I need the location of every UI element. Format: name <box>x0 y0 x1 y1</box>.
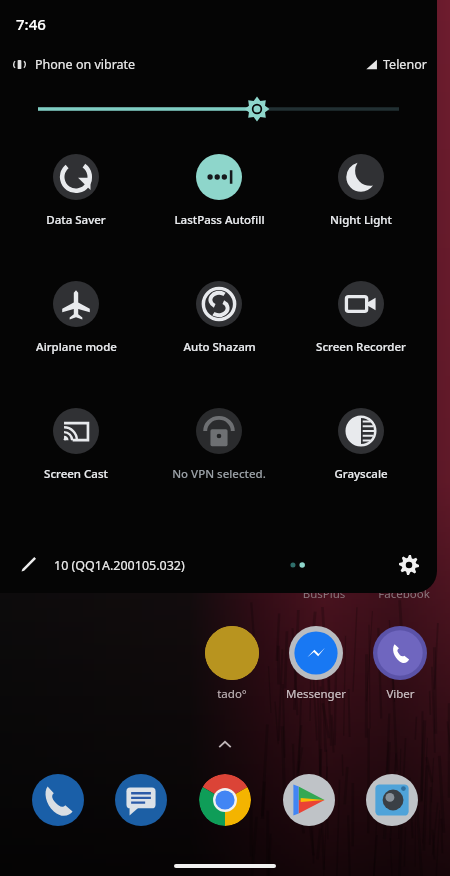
staticText: BusPlus <box>282 586 366 602</box>
button[interactable]: LastPass Autofill <box>153 154 285 228</box>
staticText: Grayscale <box>334 466 388 482</box>
button[interactable]: Data Saver <box>10 154 142 228</box>
button[interactable]: Phone <box>32 774 84 826</box>
button[interactable]: Grayscale <box>295 408 427 482</box>
button[interactable]: Edit <box>18 554 40 576</box>
button[interactable]: Auto Shazam <box>153 281 285 355</box>
staticText: 10 (QQ1A.200105.032) <box>54 557 185 574</box>
staticText: Messenger <box>286 686 346 702</box>
button[interactable]: Screen Recorder <box>295 281 427 355</box>
staticText: Phone on vibrate <box>35 56 136 73</box>
button[interactable]: Settings <box>397 553 421 577</box>
button[interactable]: Chrome <box>199 774 251 826</box>
staticText: Facebook <box>366 586 442 602</box>
button[interactable]: Viber <box>358 626 442 702</box>
staticText: 7:46 <box>16 14 46 34</box>
button[interactable]: Brightness <box>38 96 399 122</box>
button[interactable]: Airplane mode <box>10 281 142 355</box>
button[interactable]: Messages <box>115 774 167 826</box>
button[interactable]: Camera <box>366 774 418 826</box>
button[interactable]: Screen Cast <box>10 408 142 482</box>
button[interactable]: No VPN selected. <box>153 408 285 482</box>
staticText: Viber <box>386 686 415 702</box>
staticText: No VPN selected. <box>172 466 266 482</box>
staticText: Auto Shazam <box>183 339 256 355</box>
staticText: Night Light <box>330 212 392 228</box>
button[interactable]: Play Store <box>283 774 335 826</box>
staticText: Screen Recorder <box>316 339 406 355</box>
button[interactable]: Night Light <box>295 154 427 228</box>
button[interactable]: tado° <box>190 626 274 702</box>
staticText: Airplane mode <box>36 339 117 355</box>
staticText: Screen Cast <box>44 466 108 482</box>
staticText: Telenor <box>383 56 427 73</box>
staticText: LastPass Autofill <box>174 212 265 228</box>
staticText: tado° <box>217 686 247 702</box>
staticText: Data Saver <box>46 212 106 228</box>
button[interactable]: Messenger <box>274 626 358 702</box>
